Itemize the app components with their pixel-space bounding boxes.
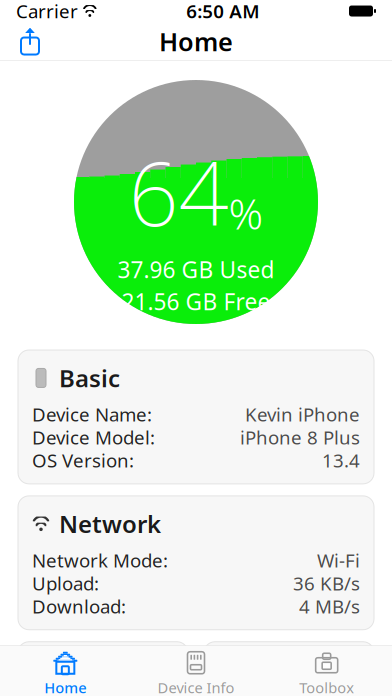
staticText: Device Model: (32, 425, 155, 450)
staticText: 37.96 GB Used (117, 254, 274, 284)
button[interactable]: Share (8, 22, 52, 60)
staticText: Network Mode: (32, 548, 168, 573)
button[interactable]: CPU (18, 642, 188, 696)
button[interactable]: Basic (18, 350, 374, 484)
staticText: Device Info (157, 678, 234, 696)
staticText: % (228, 185, 263, 241)
staticText: 21.56 GB Free (121, 286, 270, 316)
staticText: Home (159, 25, 233, 58)
button[interactable]: Memory (204, 642, 374, 696)
staticText: 64 (128, 133, 228, 250)
staticText: 13.4 (322, 448, 360, 473)
button[interactable]: Device Info (131, 645, 261, 696)
staticText: iPhone 8 Plus (240, 425, 360, 450)
staticText: Wi-Fi (317, 548, 360, 573)
staticText: Network (59, 508, 161, 540)
button[interactable]: Network (18, 496, 374, 630)
staticText: OS Version: (32, 448, 134, 473)
staticText: Memory (245, 654, 342, 686)
staticText: CPU (59, 654, 107, 686)
staticText: Carrier (16, 0, 78, 23)
staticText: Toolbox (299, 678, 354, 696)
button[interactable]: Home (0, 645, 131, 696)
staticText: Home (44, 678, 86, 696)
staticText: Kevin iPhone (245, 402, 360, 427)
button[interactable]: Toolbox (261, 645, 392, 696)
staticText: 6:50 AM (186, 0, 259, 23)
staticText: Device Name: (32, 402, 152, 427)
staticText: Download: (32, 594, 126, 619)
staticText: Basic (59, 362, 120, 394)
staticText: 4 MB/s (299, 594, 360, 619)
staticText: 36 KB/s (293, 571, 360, 596)
staticText: Upload: (32, 571, 99, 596)
